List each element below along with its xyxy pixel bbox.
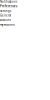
- staticText: Account: [0, 18, 11, 22]
- staticText: General: [0, 14, 11, 17]
- staticText: Preferences: [0, 4, 17, 8]
- staticText: Settings: [0, 9, 11, 13]
- staticText: My Account: [0, 23, 15, 26]
- staticText: Notifications: [0, 0, 17, 3]
